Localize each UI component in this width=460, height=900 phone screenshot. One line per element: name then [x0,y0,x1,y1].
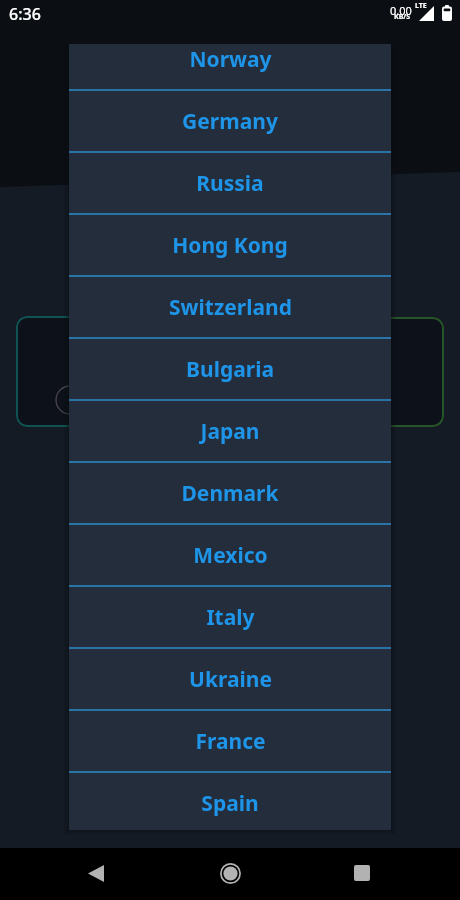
button[interactable]: Germany [69,91,391,151]
button[interactable]: France [69,711,391,771]
button[interactable]: Italy [69,587,391,647]
button[interactable]: Ukraine [69,649,391,709]
button[interactable]: Back [72,849,120,897]
staticText: Switzerland [169,293,292,322]
button[interactable]: Switzerland [69,277,391,337]
button[interactable]: Japan [69,401,391,461]
staticText: Japan [200,417,260,446]
staticText: France [195,727,266,756]
staticText: 0.00 [390,3,412,18]
button[interactable]: Mexico [69,525,391,585]
staticText: Spain [201,789,259,818]
staticText: Russia [196,169,264,198]
button[interactable]: Spain [69,773,391,830]
staticText: Ukraine [189,665,272,694]
button[interactable]: Home [206,849,254,897]
staticText: Bulgaria [186,355,274,384]
button[interactable]: Bulgaria [69,339,391,399]
staticText: KB/S [394,12,411,22]
staticText: 6:36 [9,3,41,25]
button[interactable]: Departure country [16,316,216,427]
staticText: Norway [189,45,272,74]
staticText: Mexico [193,541,268,570]
staticText: Denmark [181,479,279,508]
button[interactable]: Recents [338,849,386,897]
button[interactable]: Destination country [237,317,444,427]
staticText: Italy [206,603,255,632]
button[interactable]: Denmark [69,463,391,523]
button[interactable]: Hong Kong [69,215,391,275]
button[interactable]: Russia [69,153,391,213]
staticText: Germany [182,107,278,136]
staticText: LTE [415,1,427,11]
staticText: Hong Kong [172,231,288,260]
button[interactable]: Norway [69,44,391,89]
